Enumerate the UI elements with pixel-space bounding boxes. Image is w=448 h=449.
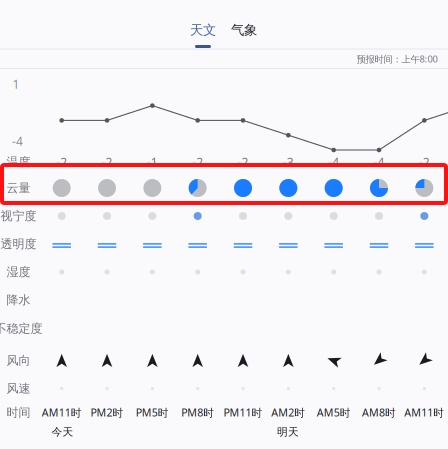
staticText: 透明度 bbox=[0, 237, 36, 251]
staticText: 今天 bbox=[51, 425, 73, 438]
staticText: -2 bbox=[101, 154, 112, 170]
staticText: 降水 bbox=[6, 293, 30, 307]
staticText: -4 bbox=[373, 154, 384, 170]
staticText: -4 bbox=[12, 133, 23, 149]
staticText: -2 bbox=[56, 154, 67, 170]
staticText: PM5时 bbox=[136, 405, 169, 420]
staticText: 不稳定度 bbox=[0, 321, 42, 336]
staticText: PM11时 bbox=[223, 405, 262, 420]
staticText: AM5时 bbox=[317, 405, 351, 420]
staticText: 风速 bbox=[6, 381, 30, 396]
staticText: PM2时 bbox=[90, 405, 123, 420]
staticText: 视宁度 bbox=[0, 209, 36, 223]
staticText: 湿度 bbox=[6, 265, 30, 279]
staticText: AM11时 bbox=[404, 405, 444, 420]
staticText: PM8时 bbox=[181, 405, 214, 420]
button[interactable]: 气象 bbox=[222, 13, 266, 47]
staticText: -2 bbox=[419, 154, 430, 170]
staticText: 1 bbox=[12, 76, 19, 92]
staticText: AM2时 bbox=[271, 405, 305, 420]
staticText: 气象 bbox=[231, 22, 257, 38]
staticText: 天文 bbox=[190, 22, 216, 38]
staticText: 预报时间：上午8:00 bbox=[356, 53, 437, 65]
staticText: -2 bbox=[192, 154, 203, 170]
staticText: -4 bbox=[328, 154, 339, 170]
staticText: 明天 bbox=[277, 425, 299, 438]
staticText: 时间 bbox=[6, 405, 30, 420]
staticText: -2 bbox=[237, 154, 248, 170]
staticText: 云量 bbox=[6, 181, 30, 195]
staticText: AM8时 bbox=[362, 405, 396, 420]
button[interactable]: 天文 bbox=[181, 13, 225, 47]
staticText: -3 bbox=[283, 154, 294, 170]
staticText: -1 bbox=[147, 154, 158, 170]
staticText: 风向 bbox=[6, 353, 30, 368]
staticText: 温度 bbox=[6, 155, 30, 169]
staticText: AM11时 bbox=[42, 405, 82, 420]
